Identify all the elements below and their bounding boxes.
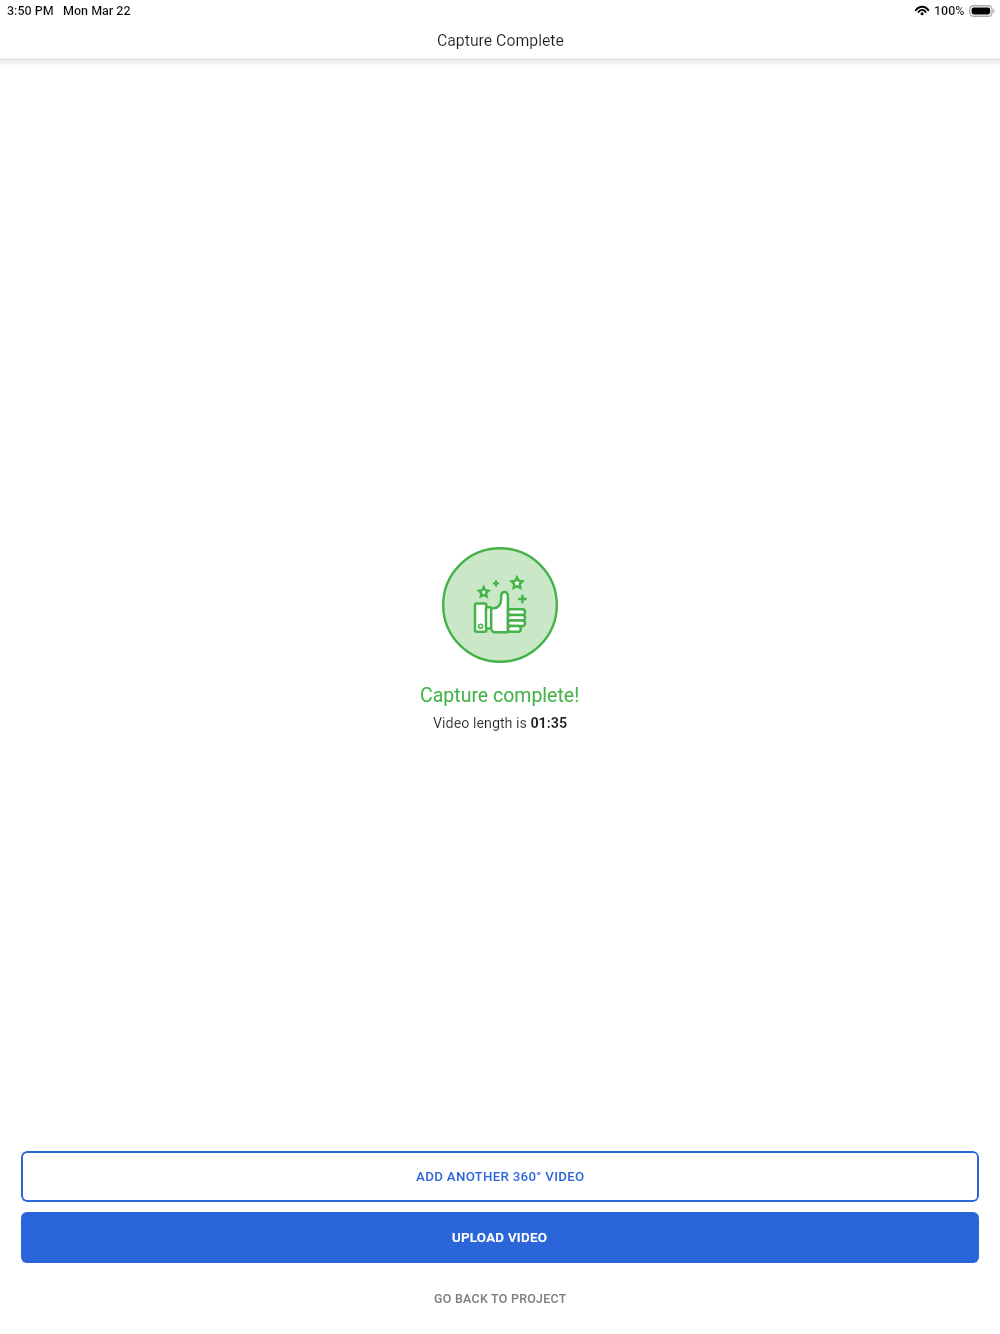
- staticText: GO BACK TO PROJECT: [434, 1291, 567, 1306]
- other: Battery 100 percent: [969, 5, 995, 17]
- staticText: UPLOAD VIDEO: [452, 1230, 548, 1246]
- staticText: ADD ANOTHER 360° VIDEO: [416, 1169, 585, 1185]
- button[interactable]: ADD ANOTHER 360° VIDEO: [21, 1151, 979, 1202]
- staticText: Mon Mar 22: [63, 3, 131, 18]
- button[interactable]: UPLOAD VIDEO: [21, 1212, 979, 1263]
- staticText: Capture complete!: [420, 684, 580, 707]
- staticText: 3:50 PM: [7, 3, 54, 18]
- staticText: Capture Complete: [437, 31, 564, 50]
- staticText: 100%: [934, 3, 965, 18]
- staticText: Video length is 01:35: [433, 715, 568, 732]
- other: Wi-Fi: [912, 4, 928, 17]
- button[interactable]: GO BACK TO PROJECT: [21, 1263, 979, 1334]
